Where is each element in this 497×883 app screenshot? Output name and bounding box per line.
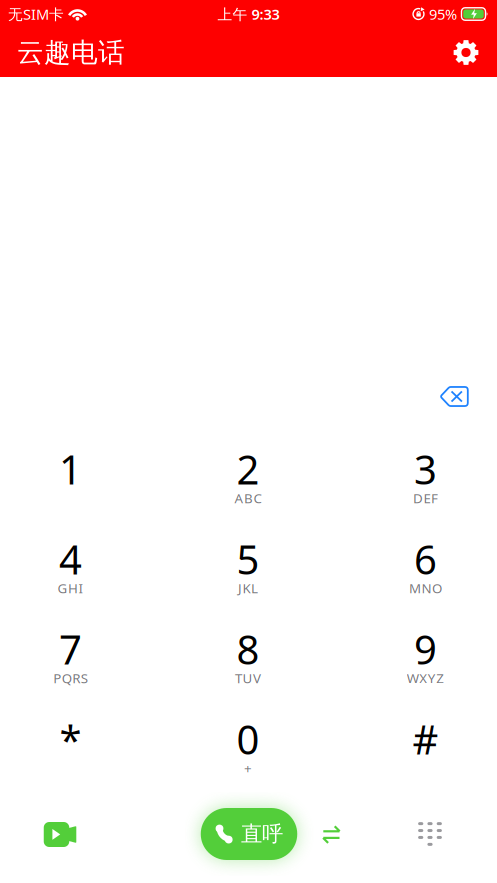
button[interactable]: * [0,713,140,779]
staticText: 云趣电话 [17,36,125,69]
staticText: DEF [413,489,438,507]
staticText: + [244,759,252,777]
staticText: 1 [59,442,82,495]
staticText: 4 [59,532,82,585]
button[interactable]: 5 [178,533,318,599]
staticText: 无SIM卡 [8,4,64,24]
staticText: WXYZ [407,669,444,687]
staticText: MNO [409,579,442,597]
staticText: JKL [238,579,258,597]
staticText: PQRS [53,669,88,687]
staticText: 直呼 [241,821,283,847]
staticText: # [412,712,438,765]
button[interactable]: 9 [355,623,495,689]
button[interactable]: Settings [446,32,486,72]
button[interactable]: 0 [178,713,318,779]
staticText: 2 [236,442,259,495]
staticText: ABC [234,489,261,507]
staticText: 6 [414,532,437,585]
button[interactable]: 6 [355,533,495,599]
button[interactable]: # [355,713,495,779]
button[interactable]: 2 [178,443,318,509]
staticText: 8 [236,622,259,675]
button[interactable]: Keypad [408,812,452,856]
button[interactable]: 1 [0,443,140,509]
staticText: 5 [236,532,259,585]
button[interactable]: Delete [432,378,476,414]
staticText: 0 [236,712,259,765]
staticText: 7 [59,622,82,675]
button[interactable]: Swap [309,812,353,856]
staticText: 上午 9:33 [217,4,279,24]
staticText: 9 [414,622,437,675]
button[interactable]: 7 [0,623,140,689]
button[interactable]: Call [201,808,297,860]
button[interactable]: 3 [355,443,495,509]
staticText: 3 [414,442,437,495]
button[interactable]: Video call [35,812,85,856]
button[interactable]: 8 [178,623,318,689]
staticText: 95% [429,4,457,24]
staticText: * [59,712,81,765]
staticText: GHI [57,579,83,597]
button[interactable]: 4 [0,533,140,599]
staticText: TUV [235,669,261,687]
